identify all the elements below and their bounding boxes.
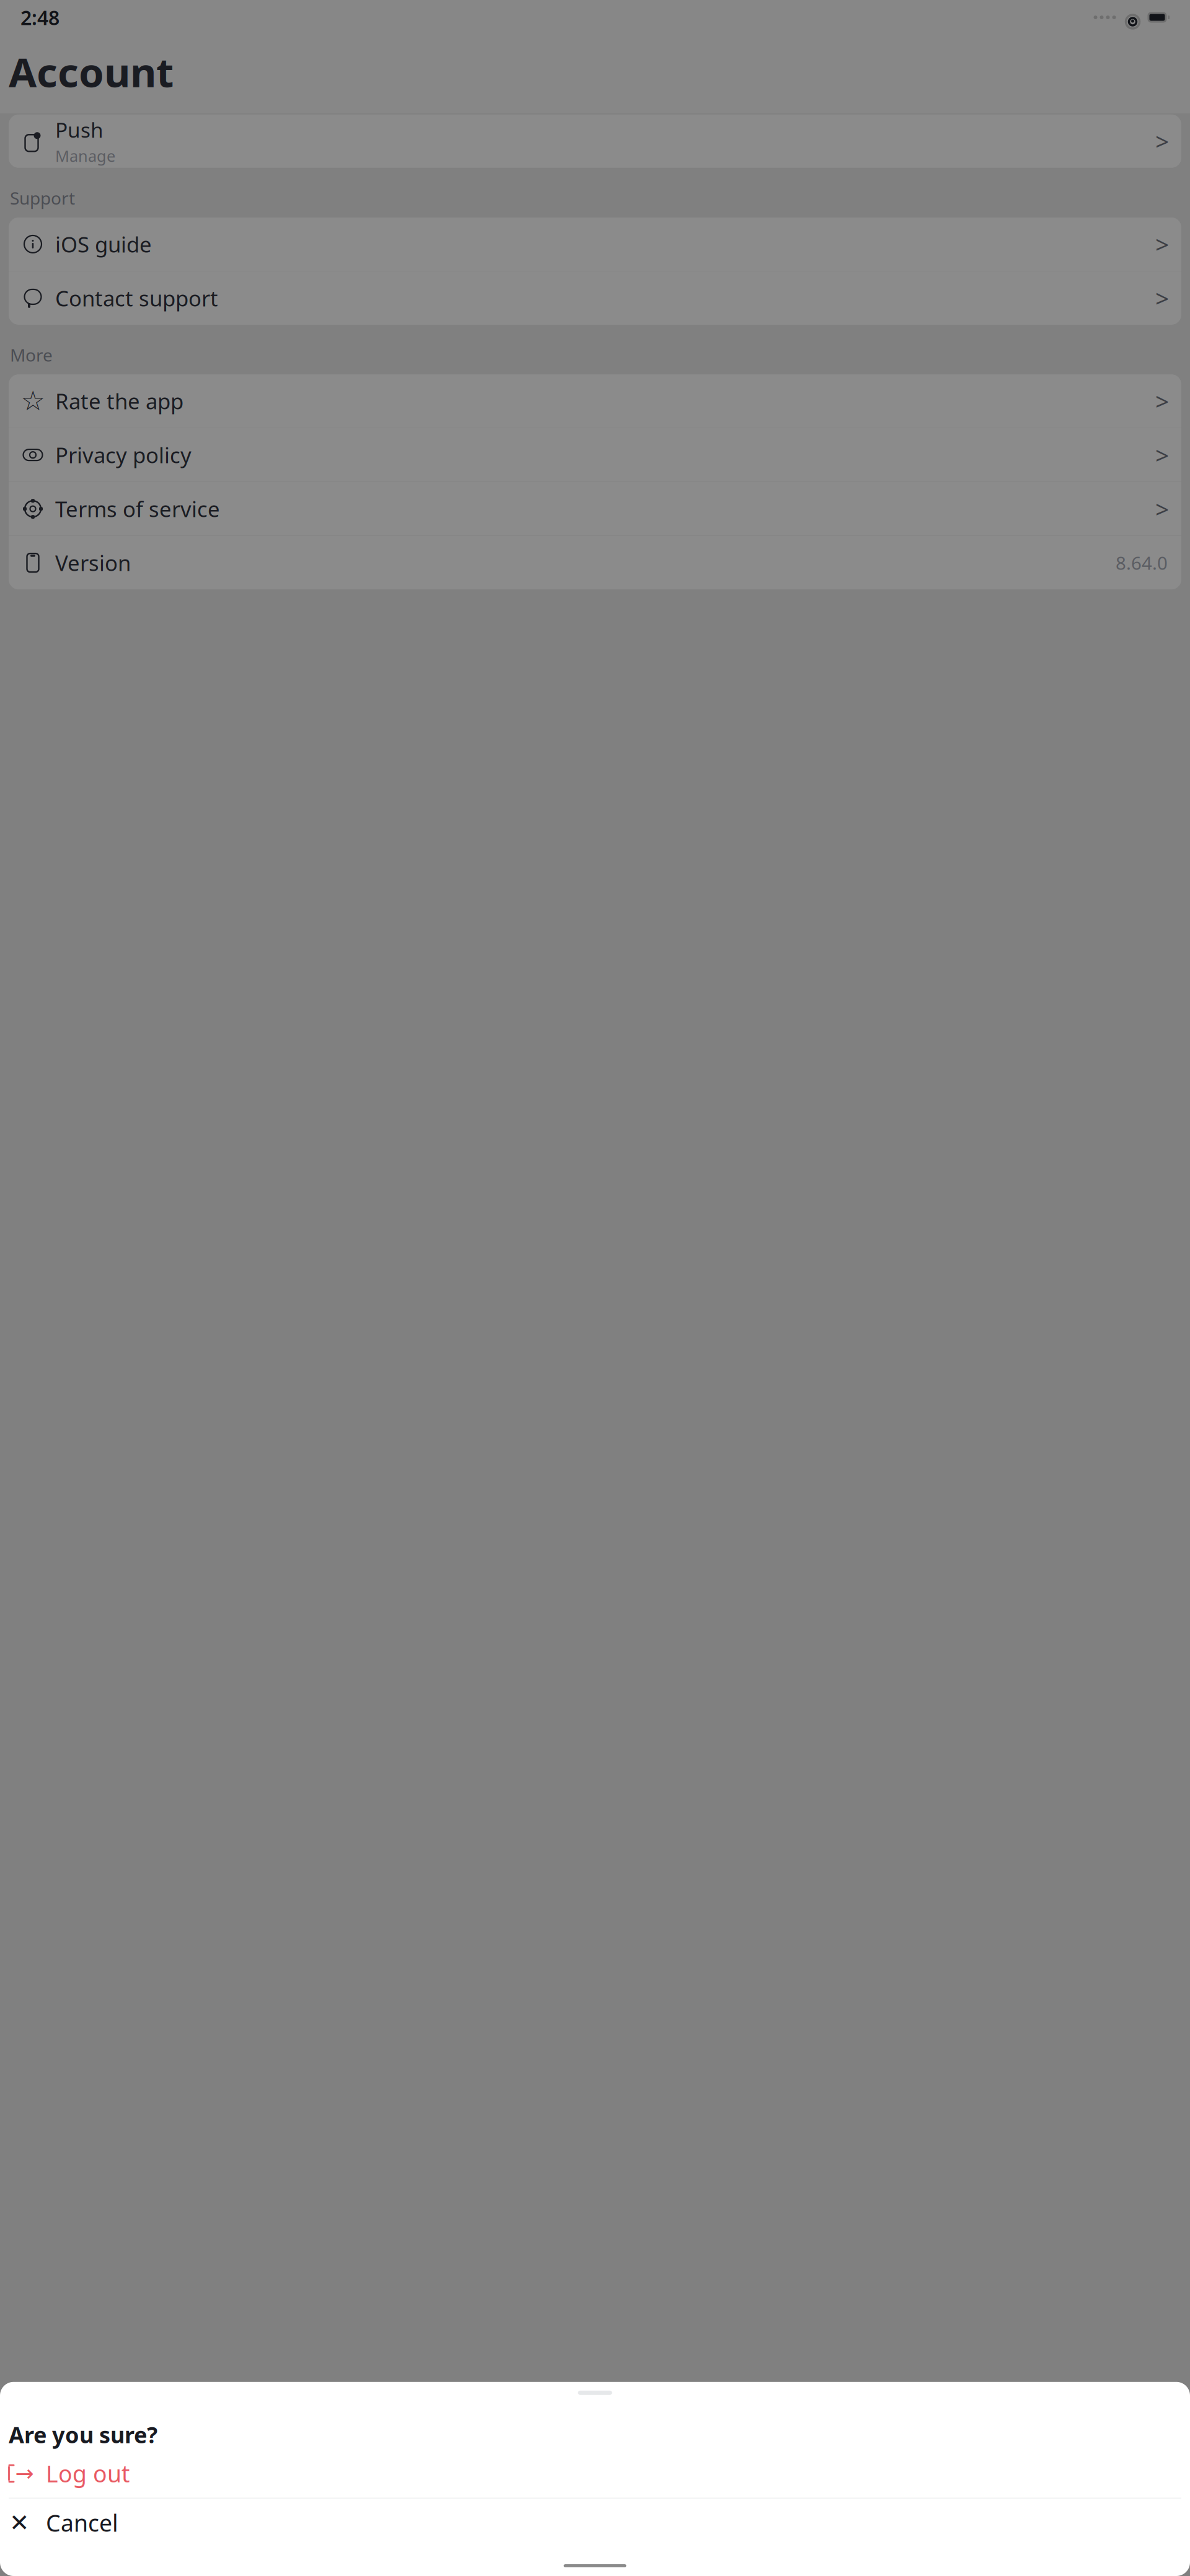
staticText: Privacy policy xyxy=(55,441,192,469)
staticText: Terms of service xyxy=(55,495,220,523)
staticText: > xyxy=(1155,282,1169,314)
staticText: > xyxy=(1155,439,1169,471)
staticText: → xyxy=(15,2461,34,2486)
button[interactable]: Terms of service xyxy=(9,482,1181,535)
staticText: More xyxy=(10,343,53,366)
staticText: Contact support xyxy=(55,284,218,312)
staticText: Log out xyxy=(46,2458,130,2489)
staticText: > xyxy=(1155,125,1169,157)
button[interactable]: Contact support xyxy=(9,271,1181,325)
staticText: > xyxy=(1155,385,1169,417)
button[interactable]: → xyxy=(0,2449,1190,2498)
button[interactable]: Push xyxy=(9,115,1181,168)
staticText: ✕ xyxy=(9,2509,29,2536)
staticText: > xyxy=(1155,228,1169,260)
staticText: Push xyxy=(55,116,104,144)
staticText: Support xyxy=(10,186,75,209)
button[interactable]: ☆ xyxy=(9,374,1181,428)
staticText: Rate the app xyxy=(55,387,183,415)
staticText: 8.64.0 xyxy=(1116,551,1168,575)
button[interactable]: Privacy policy xyxy=(9,428,1181,482)
staticText: > xyxy=(1155,493,1169,525)
staticText: iOS guide xyxy=(55,230,152,258)
staticText: Are you sure? xyxy=(9,2420,157,2449)
button[interactable]: iOS guide xyxy=(9,217,1181,271)
staticText: Account xyxy=(9,45,174,98)
staticText: Cancel xyxy=(46,2507,118,2538)
staticText: Manage xyxy=(55,145,115,166)
staticText: Version xyxy=(55,548,131,577)
staticText: 2:48 xyxy=(20,4,59,31)
button[interactable]: ✕ xyxy=(0,2499,1190,2547)
staticText: ☆ xyxy=(21,386,45,416)
